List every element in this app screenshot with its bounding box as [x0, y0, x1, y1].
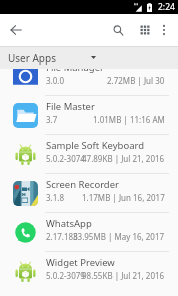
- button[interactable]: Screen Recorder: [0, 174, 178, 212]
- button[interactable]: Grid view: [131, 16, 159, 44]
- button[interactable]: Sample Soft Keyboard: [0, 135, 178, 173]
- staticText: File Manager: [46, 61, 104, 74]
- staticText: 3.0.0: [46, 75, 65, 86]
- staticText: 1.01MB | 11:16 AM: [93, 114, 165, 125]
- button[interactable]: Back: [1, 15, 31, 45]
- staticText: 5.0.2-3074: [46, 153, 85, 164]
- staticText: 2:24: [158, 1, 175, 13]
- button[interactable]: Search: [104, 16, 132, 44]
- staticText: Widget Preview: [46, 256, 115, 269]
- staticText: 3.1.8: [46, 192, 65, 203]
- staticText: 2.17.188: [46, 231, 78, 242]
- staticText: 98.55KB | Jul 21, 2016: [82, 270, 165, 281]
- staticText: Screen Recorder: [46, 178, 119, 191]
- staticText: WhatsApp: [46, 217, 92, 230]
- staticText: 3.7: [46, 114, 58, 125]
- button[interactable]: WhatsApp: [0, 213, 178, 251]
- staticText: 5.0.2-3079: [46, 270, 85, 281]
- button[interactable]: File Manager: [0, 57, 178, 95]
- staticText: 33.95MB | May 16, 2017: [73, 231, 165, 242]
- staticText: Sample Soft Keyboard: [46, 139, 145, 152]
- staticText: 47.89KB | Jul 21, 2016: [82, 153, 165, 164]
- button[interactable]: More options: [153, 19, 175, 41]
- staticText: 2.72MB | Jul 30: [107, 75, 165, 86]
- staticText: File Master: [46, 100, 95, 113]
- staticText: User Apps: [8, 51, 56, 65]
- staticText: 1.17MB | Jun 16, 2017: [82, 192, 165, 203]
- button[interactable]: User Apps: [0, 46, 178, 69]
- button[interactable]: File Master: [0, 96, 178, 134]
- button[interactable]: Widget Preview: [0, 252, 178, 290]
